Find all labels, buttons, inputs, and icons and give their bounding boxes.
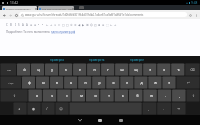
button[interactable]: Editor tool 11 [45,22,49,27]
button[interactable]: Editor tool 12 [49,22,53,27]
button[interactable]: ц [31,63,45,76]
button[interactable]: проверка [37,56,77,63]
button[interactable]: б [130,89,144,102]
staticText: проверке [130,58,144,62]
button[interactable]: Editor tool 3 [13,22,17,27]
button[interactable]: ◂ [12,102,26,115]
button[interactable]: я [29,89,44,102]
button[interactable]: ⇧ [0,89,29,102]
button[interactable]: , [172,89,186,102]
button[interactable]: е [73,63,87,76]
button[interactable]: ы [36,76,50,89]
button[interactable]: . [158,89,172,102]
button[interactable]: Editor tool 24 [97,22,101,27]
button[interactable]: й [17,63,31,76]
button[interactable]: ☺ [54,102,68,115]
staticText: й [23,67,26,72]
button[interactable]: о [106,76,120,89]
button[interactable]: к [59,63,73,76]
button[interactable]: ч [44,89,59,102]
button[interactable]: р [92,76,106,89]
button[interactable]: т [102,89,116,102]
button[interactable]: Editor tool 10 [41,22,45,27]
button[interactable]: ЙЦУ [0,76,22,89]
button[interactable]: , [141,102,156,115]
button[interactable]: Editor tool 17 [69,22,73,27]
staticText: ⌘ [86,23,89,26]
button[interactable]: у [45,63,59,76]
button[interactable]: ш [115,63,129,76]
button[interactable]: Editor tool 18 [73,22,77,27]
button[interactable]: Back [74,115,86,125]
button[interactable]: Editor tool 15 [61,22,65,27]
button[interactable]: www.gs.ru/ru/forum/threads/1d0fd6fd301ff… [19,12,187,17]
button[interactable]: Editor tool 2 [9,22,13,27]
button[interactable]: а [64,76,78,89]
button[interactable]: New tab [79,6,84,9]
button[interactable]: м [74,89,88,102]
button[interactable]: Editor tool 7 [29,22,33,27]
button[interactable]: Recent apps [115,115,127,125]
staticText: Tab [7,68,11,71]
button[interactable]: Editor tool 13 [53,22,57,27]
button[interactable]: ⇧ [186,89,200,102]
button[interactable]: / [40,102,54,115]
button[interactable]: Editor tool 21 [85,22,89,27]
button[interactable]: The new Android app - Goo [38,6,74,10]
button[interactable]: Editor tool 20 [81,22,85,27]
button[interactable]: Editor tool 27 [109,22,113,27]
button[interactable]: Editor tool 1 [5,22,9,27]
button[interactable]: Editor tool 6 [25,22,29,27]
button[interactable]: Editor tool 26 [105,22,109,27]
staticText: ъ [177,67,180,72]
button[interactable]: с [59,89,74,102]
button[interactable]: х [157,63,171,76]
button[interactable]: Tab [0,63,17,76]
button[interactable]: Editor tool 14 [57,22,61,27]
button[interactable]: Editor tool 25 [101,22,105,27]
button[interactable]: ъ [171,63,185,76]
button[interactable]: Editor tool 19 [77,22,81,27]
button[interactable]: п [78,76,92,89]
button[interactable]: Editor tool 16 [65,22,69,27]
button[interactable]: з [143,63,157,76]
button[interactable]: н [87,63,101,76]
button[interactable]: д [134,76,148,89]
button[interactable]: Editor tool 8 [33,22,37,27]
button[interactable]: г [101,63,115,76]
button[interactable]: Forward [7,11,13,19]
staticText: The new Android app - Goo [42,7,73,10]
button[interactable]: ⇥ [171,102,186,115]
button[interactable]: Menu [193,11,199,19]
button[interactable]: Project configuration | And [2,6,37,10]
button[interactable]: Bookmark [187,11,193,19]
staticText: проверить [89,58,105,62]
button[interactable]: ж [148,76,162,89]
staticText: ☺ [59,107,63,111]
button[interactable]: Editor tool 4 [17,22,21,27]
button[interactable]: проверить [77,56,117,63]
button[interactable]: Editor tool 23 [93,22,97,27]
button[interactable]: проверке [117,56,157,63]
button[interactable]: . [156,102,171,115]
button[interactable]: Editor tool 22 [89,22,93,27]
button[interactable]: Reload [13,11,19,19]
button[interactable]: Editor tool 9 [37,22,41,27]
button[interactable]: ф [22,76,36,89]
button[interactable]: ↵ [176,76,200,89]
button[interactable] [68,102,141,115]
button[interactable]: в [50,76,64,89]
button[interactable]: и [88,89,102,102]
button[interactable]: л [120,76,134,89]
button[interactable]: ь [116,89,130,102]
button[interactable]: ⌫ [185,63,200,76]
button[interactable]: щ [129,63,143,76]
button[interactable]: ● [26,102,40,115]
button[interactable]: ю [144,89,158,102]
button[interactable]: э [162,76,176,89]
button[interactable]: Back [1,11,7,19]
button[interactable]: Editor tool 28 [113,22,117,27]
staticText: ● [32,107,35,111]
button[interactable]: Home [94,115,106,125]
button[interactable]: Editor tool 5 [21,22,25,27]
